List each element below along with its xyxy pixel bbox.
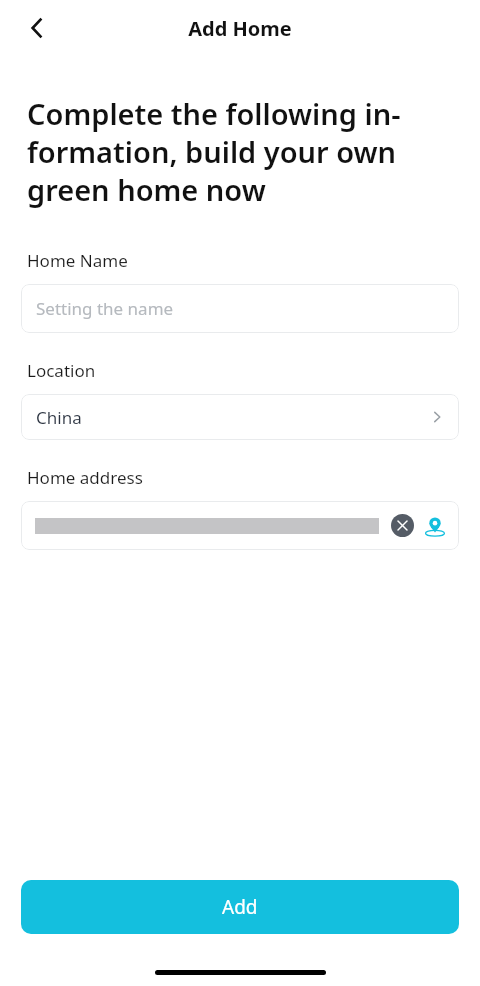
staticText: Add <box>222 894 258 920</box>
button[interactable]: Clear address <box>391 514 414 537</box>
staticText: Complete the following in- formation, bu… <box>27 94 401 209</box>
staticText: Home Name <box>27 249 128 272</box>
button[interactable]: Add <box>21 880 459 934</box>
button[interactable]: Back <box>16 7 58 49</box>
staticText: Add Home <box>188 15 292 42</box>
button[interactable]: Pick location on map <box>422 513 448 539</box>
staticText: Location <box>27 359 96 382</box>
button[interactable]: Clear address <box>21 501 459 550</box>
staticText: Home address <box>27 466 143 489</box>
button[interactable]: Setting the name <box>21 284 459 333</box>
staticText: Setting the name <box>36 297 174 320</box>
staticText: China <box>36 406 82 429</box>
button[interactable]: China <box>21 394 459 440</box>
